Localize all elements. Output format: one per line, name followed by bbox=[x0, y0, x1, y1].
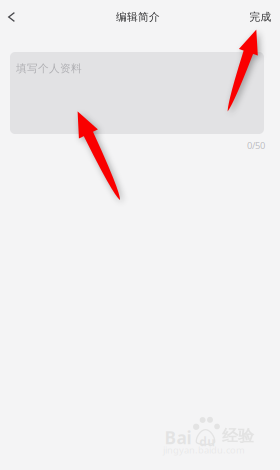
staticText: 填写个人资料 bbox=[16, 62, 82, 75]
staticText: 0/50 bbox=[247, 139, 265, 152]
staticText: Bai bbox=[164, 426, 191, 449]
staticText: du bbox=[199, 434, 215, 449]
staticText: jingyan.baidu.com bbox=[163, 443, 245, 456]
button[interactable]: 完成 bbox=[243, 4, 277, 30]
button[interactable]: 填写个人资料 bbox=[10, 52, 264, 134]
staticText: 完成 bbox=[249, 10, 271, 23]
staticText: 编辑简介 bbox=[116, 10, 160, 23]
button[interactable]: Back bbox=[0, 2, 24, 32]
staticText: 经验 bbox=[222, 426, 254, 446]
